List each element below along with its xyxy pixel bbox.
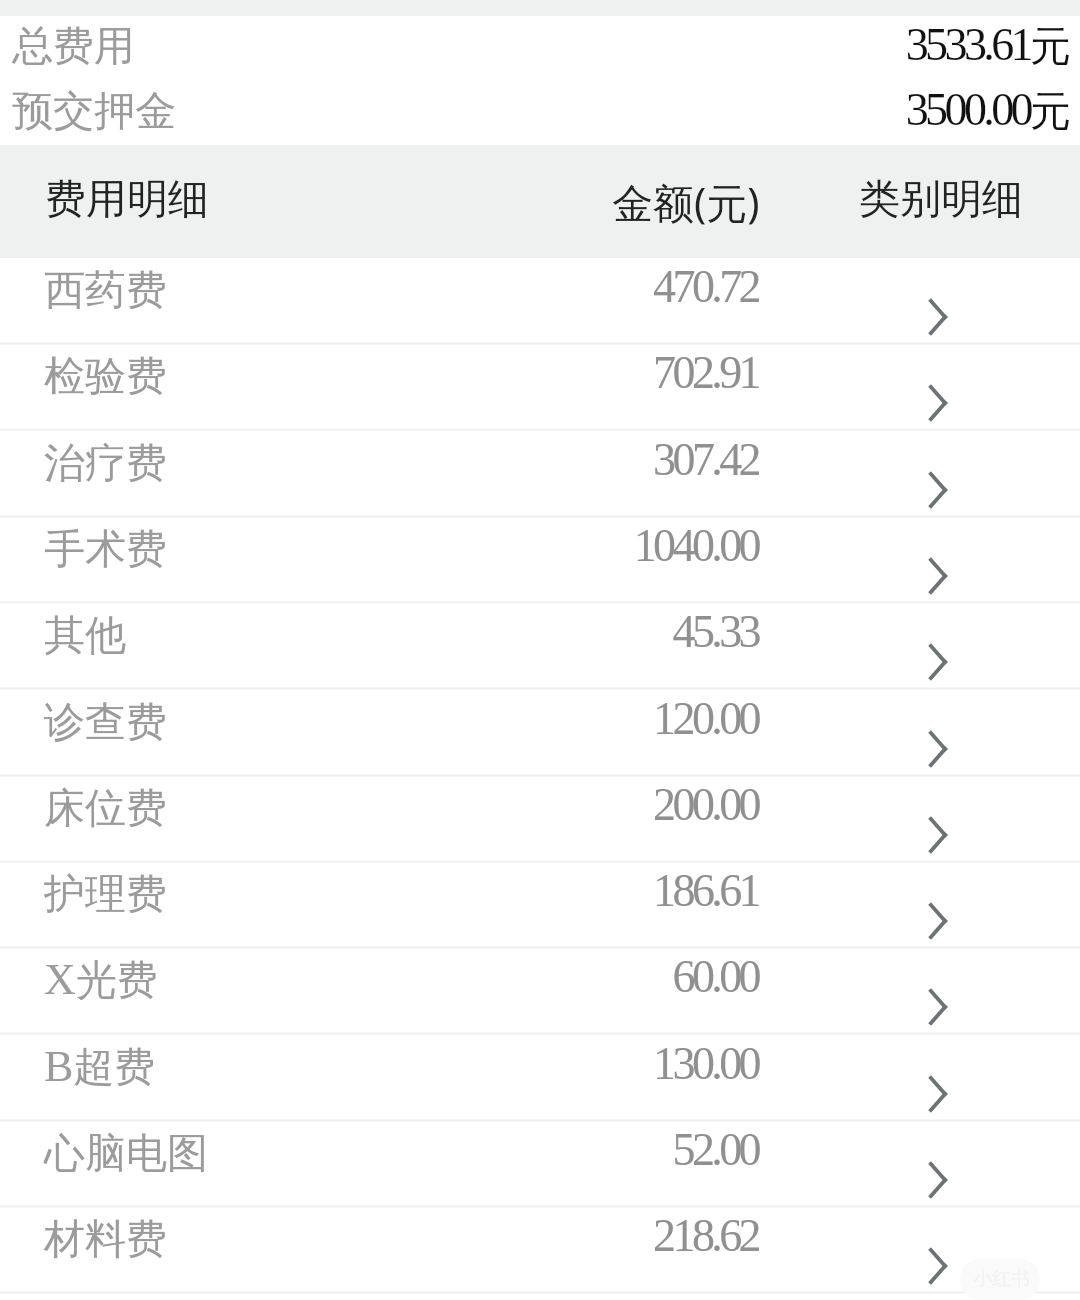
- staticText: 1040.00: [0, 520, 758, 571]
- button[interactable]: 床位费: [0, 776, 1080, 862]
- other: 查看护理费类别明细: [929, 903, 947, 939]
- button[interactable]: 治疗费: [0, 431, 1080, 517]
- staticText: 金额(元): [612, 174, 760, 230]
- staticText: 52.00: [0, 1124, 758, 1175]
- staticText: 3500.00元: [0, 84, 1071, 137]
- staticText: 预交押金: [12, 86, 176, 138]
- staticText: 130.00: [0, 1038, 758, 1089]
- other: 查看床位费类别明细: [929, 817, 947, 853]
- staticText: 护理费: [44, 869, 167, 921]
- staticText: 床位费: [44, 783, 167, 835]
- button[interactable]: 预交押金: [0, 83, 1080, 145]
- staticText: X光费: [44, 955, 158, 1007]
- other: 查看心脑电图类别明细: [929, 1162, 947, 1198]
- staticText: B超费: [44, 1042, 156, 1094]
- button[interactable]: 心脑电图: [0, 1121, 1080, 1207]
- other: 查看X光费类别明细: [929, 989, 947, 1025]
- staticText: 类别明细: [859, 174, 1023, 226]
- staticText: 费用明细: [45, 174, 209, 226]
- staticText: 总费用: [12, 21, 135, 73]
- staticText: 治疗费: [44, 438, 167, 490]
- other: 查看诊查费类别明细: [929, 731, 947, 767]
- staticText: 西药费: [44, 265, 167, 317]
- other: 查看治疗费类别明细: [929, 472, 947, 508]
- staticText: 3533.61元: [0, 19, 1071, 72]
- staticText: 心脑电图: [44, 1128, 208, 1180]
- button[interactable]: 其他: [0, 603, 1080, 689]
- staticText: 120.00: [0, 693, 758, 744]
- staticText: 702.91: [0, 347, 758, 398]
- staticText: 45.33: [0, 606, 758, 657]
- staticText: 470.72: [0, 261, 758, 312]
- staticText: 60.00: [0, 951, 758, 1002]
- other: 查看西药费类别明细: [929, 299, 947, 335]
- staticText: 186.61: [0, 865, 758, 916]
- other: 查看B超费类别明细: [929, 1076, 947, 1112]
- button[interactable]: 手术费: [0, 517, 1080, 603]
- other: 查看其他类别明细: [929, 644, 947, 680]
- button[interactable]: 西药费: [0, 258, 1080, 344]
- staticText: 诊查费: [44, 697, 167, 749]
- button[interactable]: 检验费: [0, 344, 1080, 430]
- button[interactable]: 护理费: [0, 862, 1080, 948]
- staticText: 材料费: [44, 1214, 167, 1266]
- button[interactable]: B超费: [0, 1035, 1080, 1121]
- staticText: 检验费: [44, 351, 167, 403]
- staticText: 218.62: [0, 1210, 758, 1261]
- other: 查看手术费类别明细: [929, 558, 947, 594]
- other: 查看检验费类别明细: [929, 385, 947, 421]
- staticText: 200.00: [0, 779, 758, 830]
- other: 查看材料费类别明细: [929, 1248, 947, 1284]
- staticText: 其他: [44, 610, 126, 662]
- staticText: 307.42: [0, 434, 758, 485]
- button[interactable]: 诊查费: [0, 690, 1080, 776]
- staticText: 手术费: [44, 524, 167, 576]
- button[interactable]: 材料费: [0, 1207, 1080, 1293]
- button[interactable]: 总费用: [0, 18, 1080, 80]
- button[interactable]: X光费: [0, 948, 1080, 1034]
